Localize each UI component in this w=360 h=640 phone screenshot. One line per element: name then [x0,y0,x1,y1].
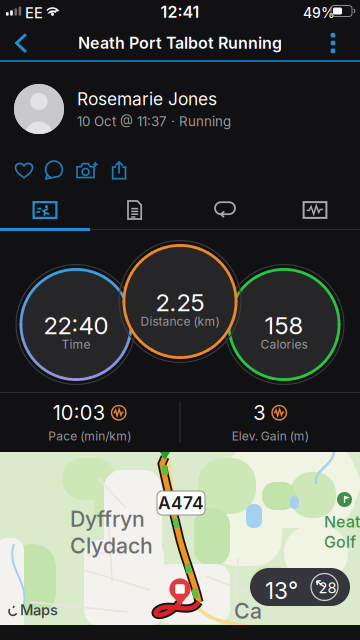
staticText: Maps [20,601,58,619]
staticText: 22:40 [43,311,108,340]
button[interactable]: Comment [39,160,69,180]
staticText: 28 [318,579,336,597]
staticText: Ca [234,598,262,624]
button[interactable]: More options [314,26,352,60]
staticText: Calories [260,337,307,352]
staticText: 10:03 [53,401,105,425]
staticText: 3 [253,401,265,425]
staticText: Neath Port Talbot Running [78,33,282,53]
staticText: Neath [324,512,360,531]
staticText: EE [25,4,43,22]
button[interactable]: Like [9,160,39,180]
button[interactable]: Analysis [270,192,360,228]
button[interactable]: Back [2,26,40,60]
staticText: A474 [158,492,204,513]
staticText: Rosemarie Jones [77,88,217,109]
staticText: Dyffryn [70,506,145,532]
button[interactable]: Splits [90,192,180,228]
button[interactable]: Share [104,160,134,180]
staticText: Pace (min/km) [48,429,131,443]
button[interactable]: Activity [0,192,90,228]
staticText: 10 Oct @ 11:37 · Running [77,113,231,129]
staticText: 49% [303,4,335,21]
staticText: 158 [264,311,303,340]
button[interactable]: Add photo [73,160,103,180]
staticText: 12:41 [160,2,199,22]
button[interactable]: Rosemarie Jones [0,84,360,134]
staticText: Clydach [70,533,153,559]
staticText: 13° [265,577,298,604]
staticText: Elev. Gain (m) [232,429,309,443]
button[interactable]: Laps [180,192,270,228]
staticText: Distance (km) [140,314,219,329]
staticText: Time [61,337,90,352]
staticText: 2.25 [155,288,204,317]
staticText: Golf Clu [324,532,360,552]
